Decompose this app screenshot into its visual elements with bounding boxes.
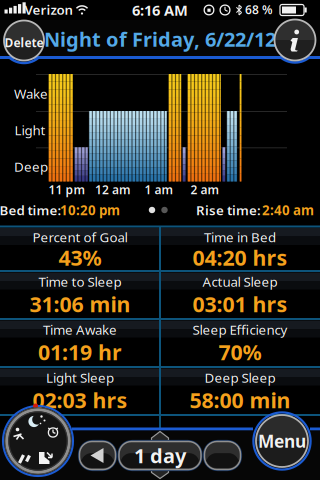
button[interactable]: Next day [203,440,241,470]
staticText: 31:06 min [29,290,130,318]
staticText: Deep Sleep [204,369,275,386]
staticText: Percent of Goal [32,228,127,246]
staticText: Light Sleep [46,369,114,386]
staticText: Light [14,121,45,139]
staticText: 6:16 AM [132,0,188,20]
staticText: 1 am [144,181,173,197]
button[interactable]: Info [273,18,316,61]
staticText: Night of Friday, 6/22/12 [44,26,276,52]
staticText: Verizon [24,1,73,18]
staticText: 11 pm [48,181,85,197]
staticText: 70% [218,338,261,366]
button[interactable]: Sleep tracking options [4,407,72,475]
staticText: 58:00 min [189,386,290,414]
button[interactable]: Menu [255,414,309,468]
staticText: Menu [258,429,306,452]
staticText: 10:20 pm [60,201,120,219]
staticText: 2 am [190,181,219,197]
staticText: 03:01 hrs [192,290,287,318]
button[interactable]: 1 day [118,440,202,470]
button[interactable]: Delete [3,19,45,61]
staticText: 02:03 hrs [32,386,127,414]
staticText: Time in Bed [204,228,276,246]
staticText: Delete [4,34,43,50]
staticText: 68 % [245,1,273,17]
staticText: Sleep Efficiency [192,321,287,338]
staticText: 1 day [134,442,186,469]
staticText: Bed time: [0,201,61,219]
staticText: Actual Sleep [202,273,277,290]
staticText: Wake [14,85,48,102]
staticText: 04:20 hrs [192,243,287,272]
staticText: 2:40 am [262,201,314,219]
staticText: Time Awake [43,321,117,338]
staticText: Time to Sleep [38,273,121,290]
staticText: Rise time: [196,201,261,219]
button[interactable]: Previous day [78,440,116,470]
staticText: 01:19 hr [38,338,122,366]
staticText: 12 am [95,181,131,197]
staticText: Deep [14,158,48,175]
staticText: 43% [58,243,101,272]
